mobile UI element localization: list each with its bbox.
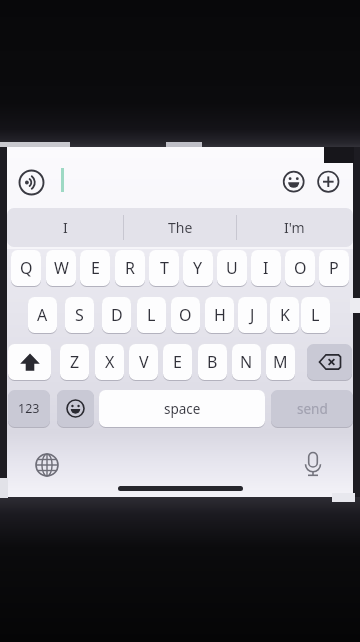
button[interactable]: R: [115, 250, 145, 286]
staticText: Q: [20, 257, 33, 279]
button[interactable]: I: [8, 208, 123, 247]
staticText: Y: [193, 257, 203, 279]
staticText: send: [297, 400, 328, 418]
button[interactable]: [282, 170, 306, 194]
staticText: V: [139, 351, 149, 373]
button[interactable]: J: [238, 297, 267, 333]
staticText: S: [75, 304, 84, 326]
button[interactable]: The: [124, 208, 236, 247]
staticText: O: [294, 257, 307, 279]
button[interactable]: I: [251, 250, 281, 286]
staticText: W: [54, 257, 69, 279]
staticText: X: [105, 351, 115, 373]
button[interactable]: send: [271, 390, 353, 427]
button[interactable]: [17, 168, 46, 197]
button[interactable]: A: [28, 297, 57, 333]
button[interactable]: E: [80, 250, 110, 286]
staticText: O: [179, 304, 192, 326]
button[interactable]: M: [266, 344, 295, 380]
staticText: 123: [18, 400, 40, 417]
staticText: L: [147, 304, 156, 326]
staticText: K: [280, 304, 290, 326]
button[interactable]: [57, 390, 94, 427]
button[interactable]: B: [198, 344, 227, 380]
button[interactable]: L: [137, 297, 166, 333]
staticText: B: [207, 351, 218, 373]
button[interactable]: T: [149, 250, 179, 286]
button[interactable]: N: [232, 344, 261, 380]
staticText: I: [63, 218, 68, 237]
staticText: P: [329, 257, 339, 279]
staticText: U: [226, 257, 238, 279]
staticText: E: [173, 351, 182, 373]
button[interactable]: U: [217, 250, 247, 286]
staticText: Z: [70, 351, 80, 373]
button[interactable]: H: [205, 297, 234, 333]
staticText: M: [273, 351, 288, 373]
button[interactable]: V: [129, 344, 158, 380]
button[interactable]: L: [301, 297, 330, 333]
button[interactable]: P: [319, 250, 349, 286]
staticText: L: [311, 304, 320, 326]
button[interactable]: S: [65, 297, 94, 333]
button[interactable]: [307, 344, 352, 380]
button[interactable]: [8, 344, 51, 380]
button[interactable]: Y: [183, 250, 213, 286]
button[interactable]: I'm: [237, 208, 352, 247]
button[interactable]: [300, 450, 326, 478]
button[interactable]: [317, 170, 341, 194]
button[interactable]: Z: [60, 344, 89, 380]
staticText: H: [214, 304, 226, 326]
button[interactable]: O: [171, 297, 200, 333]
staticText: I: [263, 257, 269, 279]
staticText: T: [160, 257, 169, 279]
button[interactable]: X: [95, 344, 124, 380]
staticText: space: [164, 400, 201, 418]
staticText: R: [125, 257, 135, 279]
staticText: A: [37, 304, 48, 326]
staticText: J: [250, 304, 255, 326]
button[interactable]: K: [270, 297, 299, 333]
staticText: D: [111, 304, 123, 326]
button[interactable]: W: [46, 250, 76, 286]
button[interactable]: D: [102, 297, 131, 333]
button[interactable]: [33, 451, 61, 479]
button[interactable]: E: [163, 344, 192, 380]
button[interactable]: 123: [8, 390, 50, 427]
button[interactable]: Q: [11, 250, 41, 286]
button[interactable]: O: [285, 250, 315, 286]
button[interactable]: space: [99, 390, 265, 427]
staticText: The: [168, 218, 193, 237]
staticText: E: [91, 257, 100, 279]
staticText: I'm: [284, 218, 305, 237]
staticText: N: [240, 351, 253, 373]
